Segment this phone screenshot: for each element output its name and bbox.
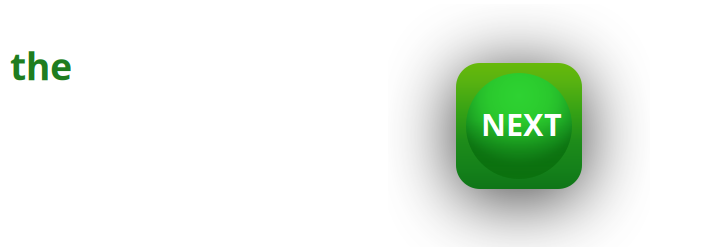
staticText: NEXT bbox=[481, 104, 562, 144]
button[interactable]: NEXT bbox=[456, 63, 582, 189]
staticText: the bbox=[10, 41, 72, 91]
